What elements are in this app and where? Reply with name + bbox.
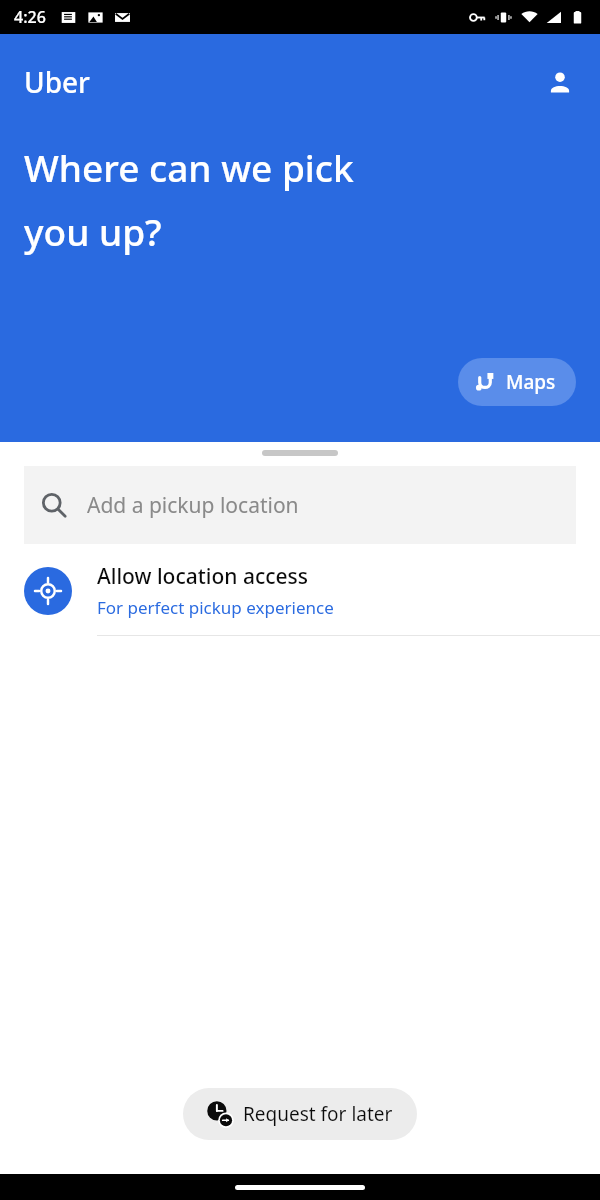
button[interactable]: Maps <box>458 358 576 406</box>
staticText: Where can we pick <box>24 142 354 192</box>
staticText: 4:26 <box>14 6 46 28</box>
button[interactable]: Add a pickup location <box>24 466 576 544</box>
staticText: Maps <box>506 369 556 395</box>
staticText: For perfect pickup experience <box>97 596 334 619</box>
staticText: Uber <box>24 63 90 101</box>
staticText: Request for later <box>243 1101 393 1127</box>
staticText: Add a pickup location <box>87 491 299 520</box>
button[interactable]: Request for later <box>183 1088 417 1140</box>
button[interactable]: Uber <box>24 63 90 101</box>
button[interactable]: Allow location access <box>0 544 600 635</box>
button[interactable]: Profile <box>540 62 580 102</box>
staticText: you up? <box>24 206 162 256</box>
staticText: Allow location access <box>97 562 309 591</box>
